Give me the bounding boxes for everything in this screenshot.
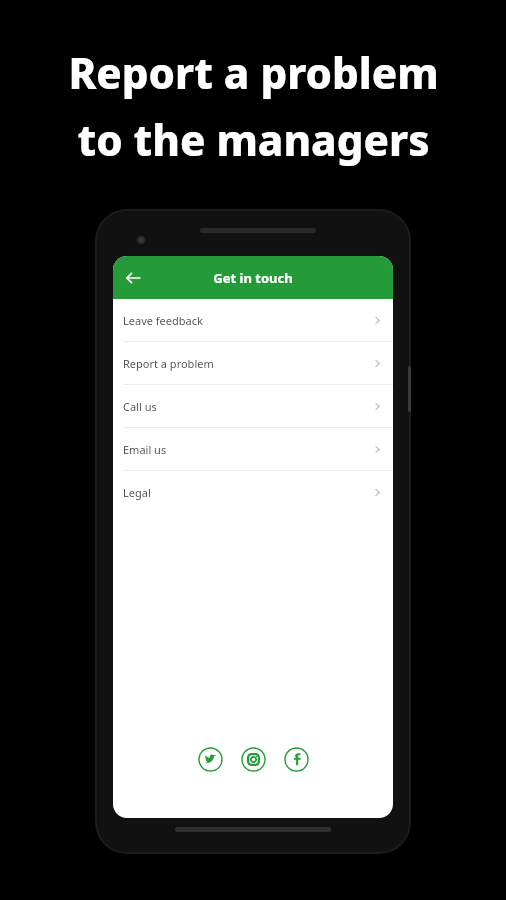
staticText: Email us	[123, 442, 373, 457]
button[interactable]: Leave feedback	[113, 299, 393, 341]
button[interactable]: Facebook	[284, 747, 309, 772]
button[interactable]: Email us	[113, 428, 393, 470]
button[interactable]: Call us	[113, 385, 393, 427]
staticText: Call us	[123, 399, 373, 414]
button[interactable]: Twitter	[198, 747, 223, 772]
staticText: Leave feedback	[123, 313, 373, 328]
staticText: Report a problem	[68, 44, 439, 101]
button[interactable]: Report a problem	[113, 342, 393, 384]
staticText: Legal	[123, 485, 373, 500]
button[interactable]: Back	[113, 256, 153, 299]
staticText: Get in touch	[213, 269, 293, 287]
staticText: to the managers	[77, 111, 430, 168]
button[interactable]: Instagram	[241, 747, 266, 772]
staticText: Report a problem	[123, 356, 373, 371]
button[interactable]: Legal	[113, 471, 393, 513]
